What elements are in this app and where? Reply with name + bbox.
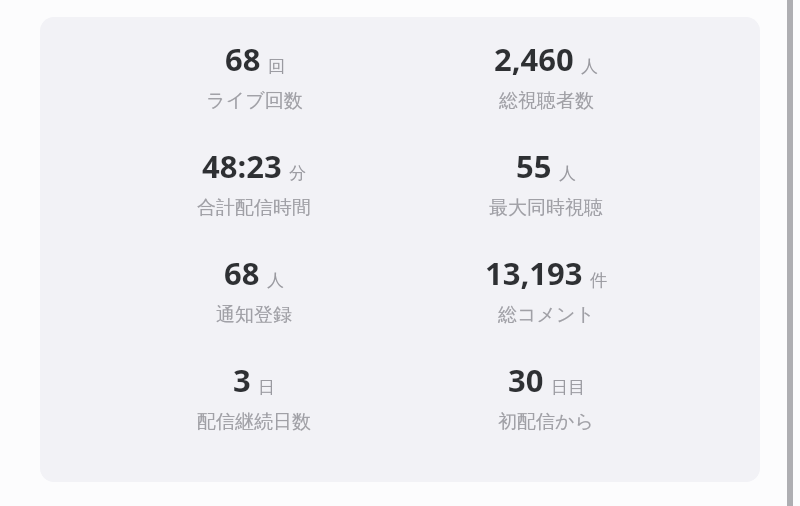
staticText: 初配信から	[498, 410, 594, 434]
staticText: 68	[225, 38, 261, 80]
button[interactable]: 13,193	[485, 252, 607, 327]
staticText: 総コメント	[498, 303, 595, 327]
staticText: 合計配信時間	[197, 196, 311, 220]
staticText: 人	[267, 270, 284, 291]
staticText: 2,460	[494, 38, 574, 80]
staticText: 日	[258, 377, 275, 398]
staticText: 最大同時視聴	[489, 196, 603, 220]
button[interactable]: 48:23	[197, 145, 311, 220]
staticText: 人	[581, 56, 598, 77]
button[interactable]: 68	[206, 38, 303, 113]
staticText: 3	[233, 359, 251, 401]
staticText: 30	[508, 359, 544, 401]
staticText: 通知登録	[216, 303, 292, 327]
button[interactable]: 30	[498, 359, 594, 434]
staticText: 日目	[551, 377, 585, 398]
staticText: 総視聴者数	[499, 89, 594, 113]
staticText: 68	[224, 252, 260, 294]
staticText: 13,193	[485, 252, 583, 294]
staticText: ライブ回数	[206, 89, 303, 113]
staticText: 回	[268, 56, 285, 77]
staticText: 48:23	[202, 145, 282, 187]
staticText: 人	[559, 163, 576, 184]
staticText: 配信継続日数	[197, 410, 311, 434]
button[interactable]: 2,460	[494, 38, 598, 113]
button[interactable]: 3	[197, 359, 311, 434]
button[interactable]: 68	[216, 252, 292, 327]
staticText: 55	[516, 145, 552, 187]
button[interactable]: 55	[489, 145, 603, 220]
staticText: 分	[289, 163, 306, 184]
staticText: 件	[590, 270, 607, 291]
